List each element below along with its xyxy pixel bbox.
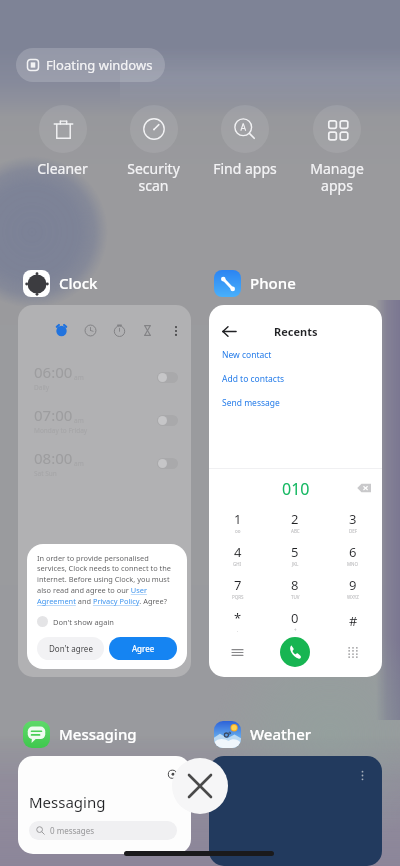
button[interactable]: Security scan bbox=[108, 105, 199, 195]
staticText: Cleaner bbox=[37, 159, 88, 178]
staticText: Agree bbox=[132, 643, 155, 654]
staticText: am bbox=[74, 416, 84, 425]
staticText: MNO bbox=[347, 561, 359, 567]
button[interactable]: Agree bbox=[109, 637, 177, 660]
button[interactable]: 9 bbox=[324, 576, 382, 600]
button[interactable]: Don't show again bbox=[37, 616, 114, 627]
button[interactable]: * bbox=[209, 609, 266, 633]
staticText: 0 messages bbox=[50, 825, 95, 836]
button[interactable]: 8 bbox=[266, 576, 324, 600]
staticText: 2 bbox=[291, 510, 299, 528]
button[interactable]: Recents bbox=[209, 305, 382, 677]
staticText: DEF bbox=[349, 528, 358, 534]
staticText: Weather bbox=[250, 724, 312, 744]
staticText: Don't show again bbox=[53, 617, 114, 627]
staticText: GHI bbox=[233, 561, 242, 567]
staticText: Clock bbox=[59, 273, 98, 293]
button[interactable]: 6 bbox=[324, 543, 382, 567]
button[interactable]: 4 bbox=[209, 543, 266, 567]
button[interactable]: 1 bbox=[209, 510, 266, 534]
button[interactable] bbox=[209, 756, 382, 866]
staticText: # bbox=[349, 612, 358, 630]
staticText: am bbox=[74, 459, 84, 468]
button[interactable]: 5 bbox=[266, 543, 324, 567]
staticText: Messaging bbox=[29, 792, 106, 812]
button[interactable]: 0 bbox=[266, 609, 324, 633]
staticText: 3 bbox=[349, 510, 357, 528]
staticText: 08:00 bbox=[34, 448, 73, 468]
staticText: JKL bbox=[292, 561, 299, 567]
staticText: Phone bbox=[250, 273, 296, 293]
staticText: * bbox=[234, 609, 242, 627]
button[interactable]: Keypad bbox=[324, 646, 382, 658]
staticText: oo bbox=[235, 528, 241, 534]
button[interactable]: Call bbox=[280, 637, 310, 667]
staticText: Floating windows bbox=[46, 56, 153, 74]
button[interactable]: # bbox=[324, 612, 382, 630]
staticText: ABC bbox=[291, 528, 300, 534]
staticText: TUV bbox=[291, 594, 300, 600]
staticText: 9 bbox=[349, 576, 357, 594]
button[interactable]: Messaging bbox=[18, 756, 191, 854]
button[interactable]: Don't agree bbox=[37, 637, 104, 660]
button[interactable]: New contact bbox=[222, 349, 272, 361]
button[interactable]: Call log bbox=[209, 646, 266, 659]
button[interactable]: Cleaner bbox=[17, 105, 108, 178]
staticText: 06:00 bbox=[34, 362, 73, 382]
button[interactable]: 3 bbox=[324, 510, 382, 534]
button[interactable]: 7 bbox=[209, 576, 266, 600]
staticText: Daily bbox=[34, 383, 50, 392]
staticText: 1 bbox=[234, 510, 242, 528]
staticText: 6 bbox=[349, 543, 357, 561]
staticText: Security scan bbox=[127, 159, 180, 195]
staticText: 7 bbox=[234, 576, 242, 594]
staticText: am bbox=[74, 373, 84, 382]
staticText: Monday to Friday bbox=[34, 426, 88, 435]
staticText: Recents bbox=[274, 324, 318, 339]
staticText: 5 bbox=[291, 543, 299, 561]
staticText: In order to provide personalised service… bbox=[37, 553, 177, 607]
staticText: 07:00 bbox=[34, 405, 73, 425]
staticText: 0 bbox=[291, 609, 299, 627]
button[interactable]: Manage apps bbox=[291, 105, 383, 195]
staticText: 010 bbox=[282, 478, 310, 498]
button[interactable]: 06:00 bbox=[18, 305, 191, 677]
staticText: Messaging bbox=[59, 724, 137, 744]
button[interactable]: Find apps bbox=[199, 105, 291, 178]
staticText: PQRS bbox=[232, 594, 244, 600]
staticText: . bbox=[237, 627, 239, 633]
staticText: 8 bbox=[291, 576, 299, 594]
button[interactable]: Add to contacts bbox=[222, 373, 285, 385]
staticText: WXYZ bbox=[347, 594, 359, 600]
staticText: Sat Sun bbox=[34, 469, 57, 478]
button[interactable]: Floating windows bbox=[16, 48, 165, 82]
staticText: Manage apps bbox=[310, 159, 364, 195]
button[interactable]: Close all bbox=[172, 758, 228, 814]
staticText: + bbox=[294, 627, 297, 633]
staticText: Don't agree bbox=[49, 643, 93, 654]
button[interactable]: 2 bbox=[266, 510, 324, 534]
staticText: Find apps bbox=[213, 159, 277, 178]
button[interactable]: Send message bbox=[222, 397, 280, 409]
staticText: 4 bbox=[234, 543, 242, 561]
